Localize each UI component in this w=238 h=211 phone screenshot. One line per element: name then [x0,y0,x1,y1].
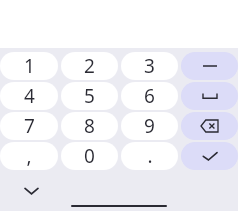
button[interactable]: , [0,142,58,170]
button[interactable]: Backspace [181,112,238,140]
button[interactable]: Minus [181,52,238,80]
staticText: 6 [144,83,155,109]
button[interactable]: Space [181,82,238,110]
button[interactable]: 1 [0,52,58,80]
button[interactable]: 3 [121,52,178,80]
button[interactable]: 7 [0,112,58,140]
staticText: 9 [144,113,155,139]
button[interactable]: Hide keyboard [18,178,44,204]
button[interactable]: 9 [121,112,178,140]
staticText: 2 [84,53,95,79]
staticText: 3 [144,53,155,79]
button[interactable]: . [121,142,178,170]
staticText: , [26,143,32,169]
button[interactable]: Done [181,142,238,170]
staticText: 8 [84,113,95,139]
button[interactable]: 6 [121,82,178,110]
staticText: 5 [84,83,95,109]
button[interactable]: 5 [61,82,118,110]
staticText: . [147,143,153,169]
button[interactable]: 4 [0,82,58,110]
staticText: 1 [24,53,35,79]
staticText: 4 [24,83,35,109]
button[interactable]: 0 [61,142,118,170]
staticText: 7 [24,113,35,139]
staticText: 0 [84,143,95,169]
button[interactable]: 8 [61,112,118,140]
button[interactable]: 2 [61,52,118,80]
